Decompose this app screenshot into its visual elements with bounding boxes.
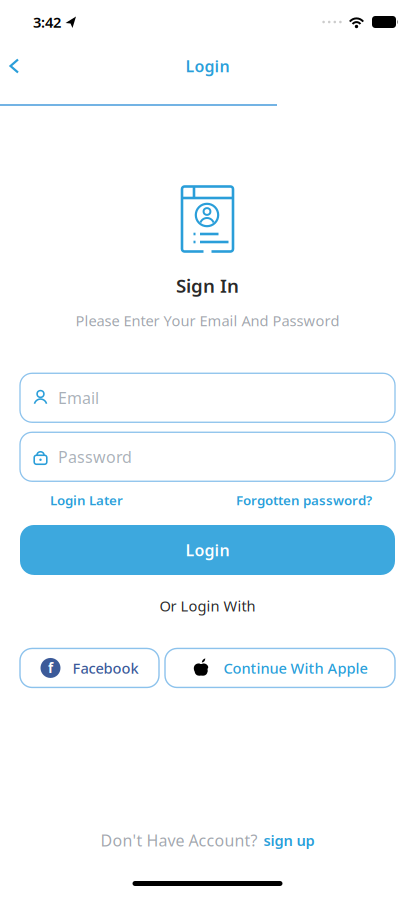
button[interactable]: Password [20, 432, 395, 481]
staticText: f [48, 659, 53, 677]
staticText: sign up [263, 831, 314, 850]
staticText: Please Enter Your Email And Password [75, 311, 339, 330]
button[interactable]: Login Later [50, 491, 123, 509]
staticText: Forgotten password? [236, 491, 372, 509]
staticText: Don't Have Account? [100, 830, 257, 851]
staticText: Email [58, 387, 99, 408]
button[interactable]: Login [20, 525, 395, 575]
staticText: Password [58, 446, 132, 467]
staticText: Continue With Apple [223, 658, 367, 678]
button[interactable]: Email [20, 373, 395, 422]
staticText: Or Login With [159, 596, 255, 615]
staticText: Login [185, 539, 229, 560]
button[interactable]: f [20, 648, 159, 687]
button[interactable]: Continue With Apple [165, 648, 395, 687]
staticText: Sign In [176, 273, 239, 298]
staticText: 3:42 [33, 12, 61, 32]
staticText: Login Later [50, 491, 123, 509]
button[interactable]: sign up [263, 831, 314, 850]
staticText: Login [185, 55, 229, 77]
button[interactable]: Forgotten password? [236, 491, 372, 509]
button[interactable]: Back [0, 49, 19, 83]
staticText: Facebook [72, 658, 138, 678]
